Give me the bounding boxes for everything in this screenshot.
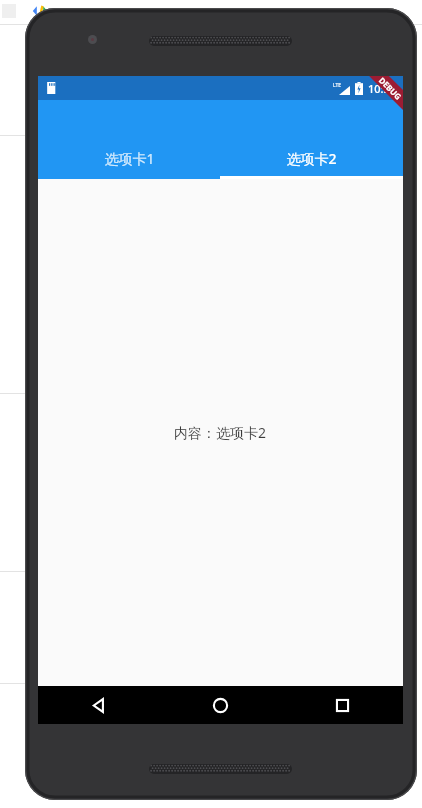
staticText: 选项卡1	[104, 149, 155, 168]
staticText: DEBUG	[377, 76, 403, 102]
button[interactable]: Home	[159, 686, 281, 724]
staticText: 选项卡2	[286, 149, 337, 168]
staticText: LTE	[333, 82, 342, 89]
button[interactable]: 选项卡1	[38, 100, 220, 176]
staticText: 10:53	[368, 81, 397, 96]
button[interactable]: Recent apps	[281, 686, 403, 724]
staticText: 内容：选项卡2	[174, 423, 267, 442]
button[interactable]: Back	[38, 686, 159, 724]
button[interactable]: 选项卡2	[220, 100, 403, 176]
